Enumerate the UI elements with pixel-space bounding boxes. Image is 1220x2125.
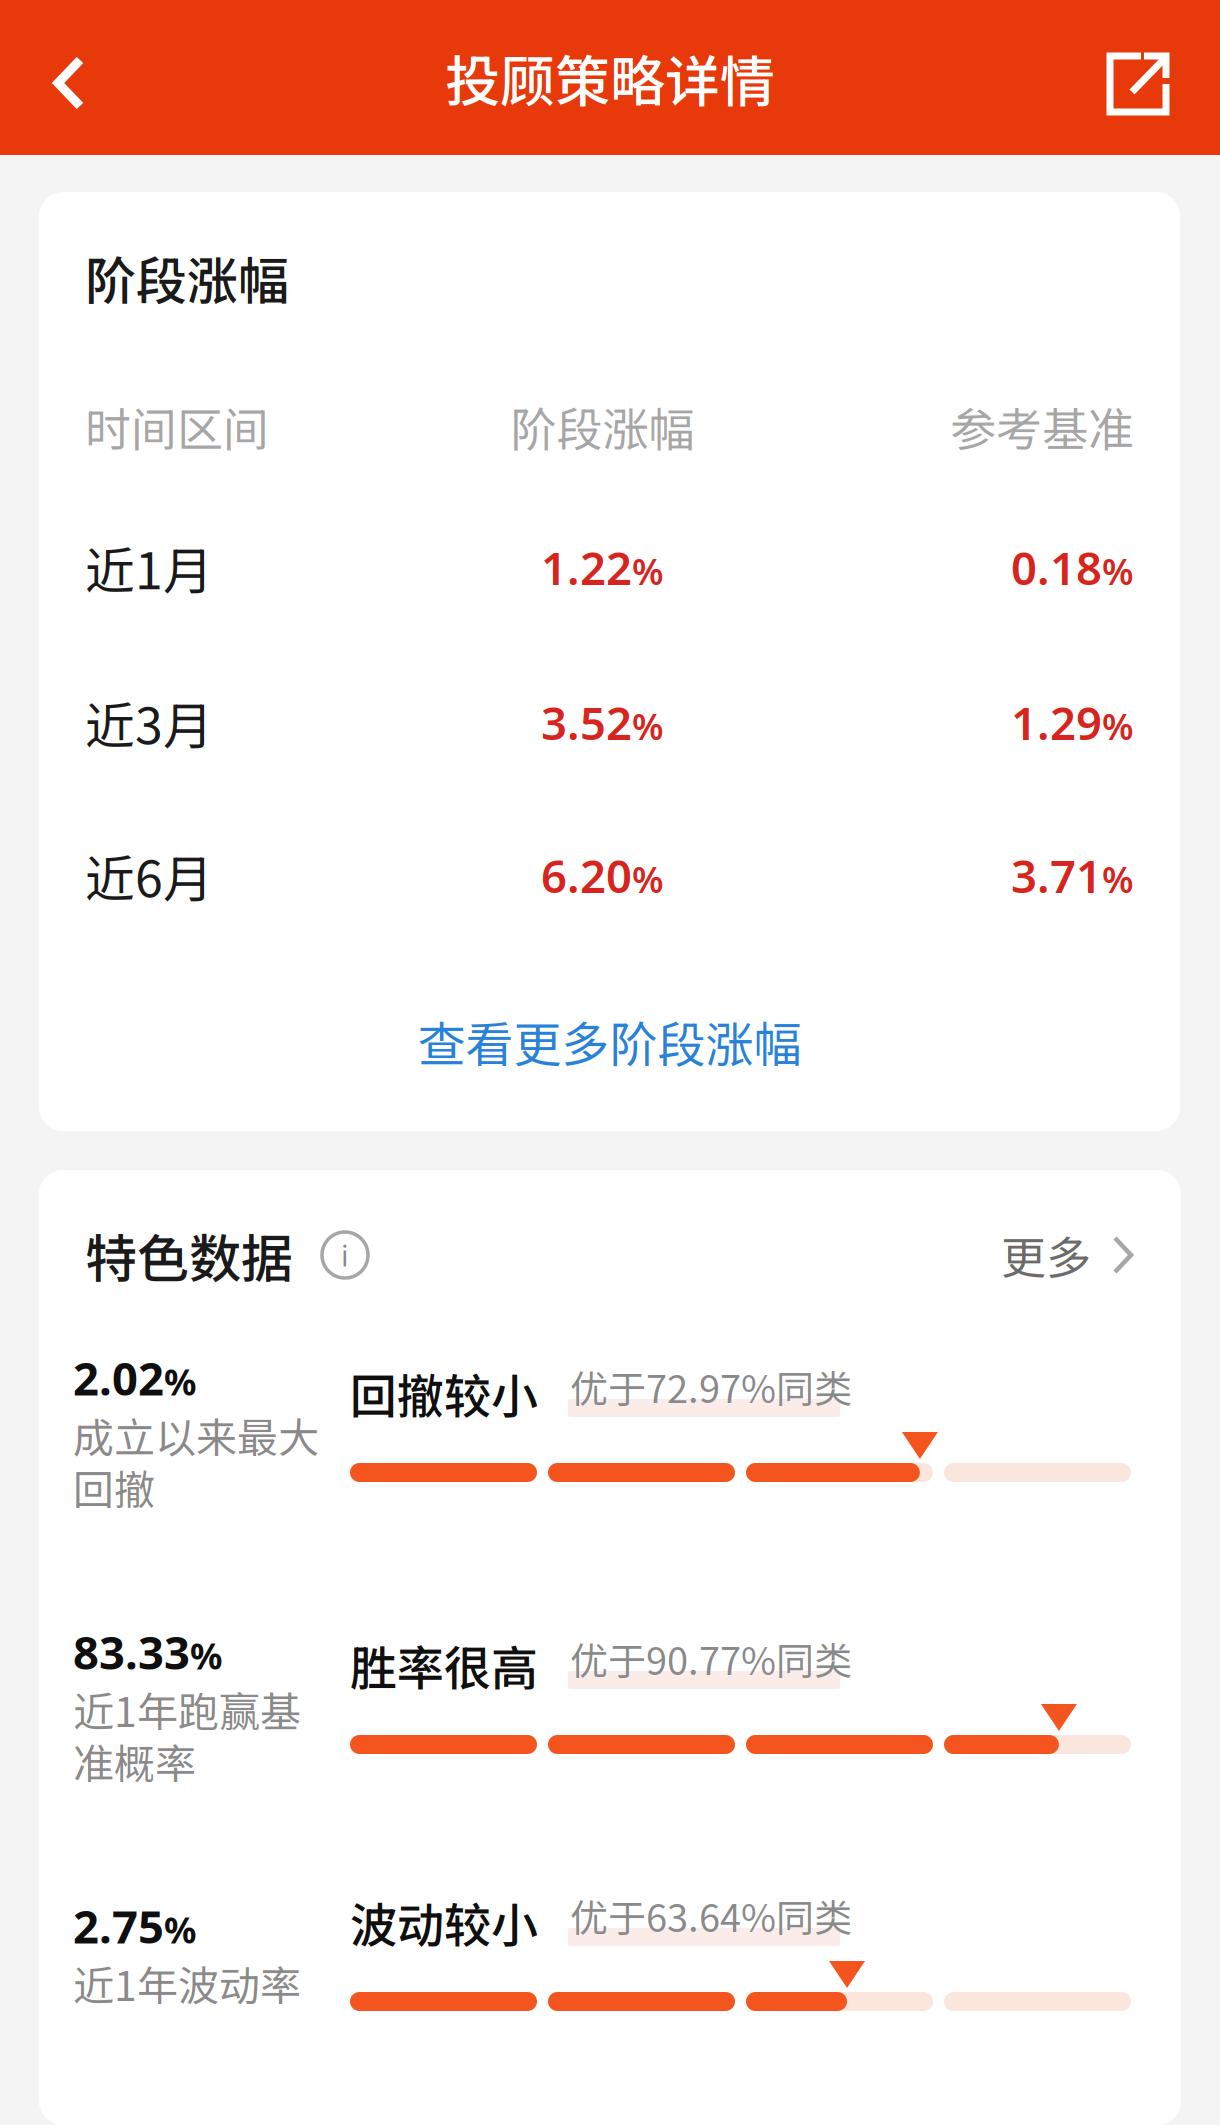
staticText: 回撤 [73,1457,155,1517]
staticText: 回撤较小 [350,1359,538,1427]
staticText: % [632,855,664,903]
staticText: 3.52 [541,692,632,753]
staticText: 0.18 [1011,537,1102,598]
staticText: 更多 [1001,1222,1091,1288]
staticText: % [632,702,664,750]
staticText: 1.22 [541,537,632,598]
staticText: 参考基准 [950,393,1134,460]
staticText: % [632,547,664,595]
staticText: 优于72.97%同类 [570,1359,852,1414]
staticText: 优于90.77%同类 [570,1631,852,1686]
staticText: 时间区间 [85,393,269,460]
staticText: 成立以来最大 [73,1405,319,1465]
staticText: 近6月 [85,839,213,912]
button[interactable]: 查看更多阶段涨幅 [85,951,1134,1131]
staticText: 近1月 [85,531,213,604]
staticText: 阶段涨幅 [85,241,289,314]
staticText: 优于63.64%同类 [570,1888,852,1943]
staticText: 近1年跑赢基 [73,1679,301,1739]
staticText: 近3月 [85,686,213,759]
staticText: 阶段涨幅 [510,393,694,460]
button[interactable]: 更多 [1001,1207,1135,1303]
staticText: 波动较小 [350,1888,538,1956]
staticText: 投顾策略详情 [445,38,775,117]
staticText: 83.33 [73,1622,190,1682]
staticText: 2.02 [73,1348,164,1408]
staticText: 6.20 [541,845,632,906]
staticText: 准概率 [73,1731,196,1791]
button[interactable]: Back [0,0,150,155]
staticText: % [1102,855,1134,903]
staticText: 特色数据 [85,1217,293,1293]
staticText: 3.71 [1011,845,1102,906]
staticText: 胜率很高 [350,1631,538,1699]
staticText: 1.29 [1011,692,1102,753]
staticText: 查看更多阶段涨幅 [417,1006,801,1076]
staticText: % [164,1906,196,1953]
staticText: 2.75 [73,1896,164,1956]
staticText: 近1年波动率 [73,1953,301,2013]
staticText: % [1102,702,1134,750]
staticText: % [164,1358,196,1405]
staticText: % [190,1632,222,1679]
staticText: % [1102,547,1134,595]
staticText: i [341,1235,349,1274]
button[interactable]: Share [1070,0,1210,155]
